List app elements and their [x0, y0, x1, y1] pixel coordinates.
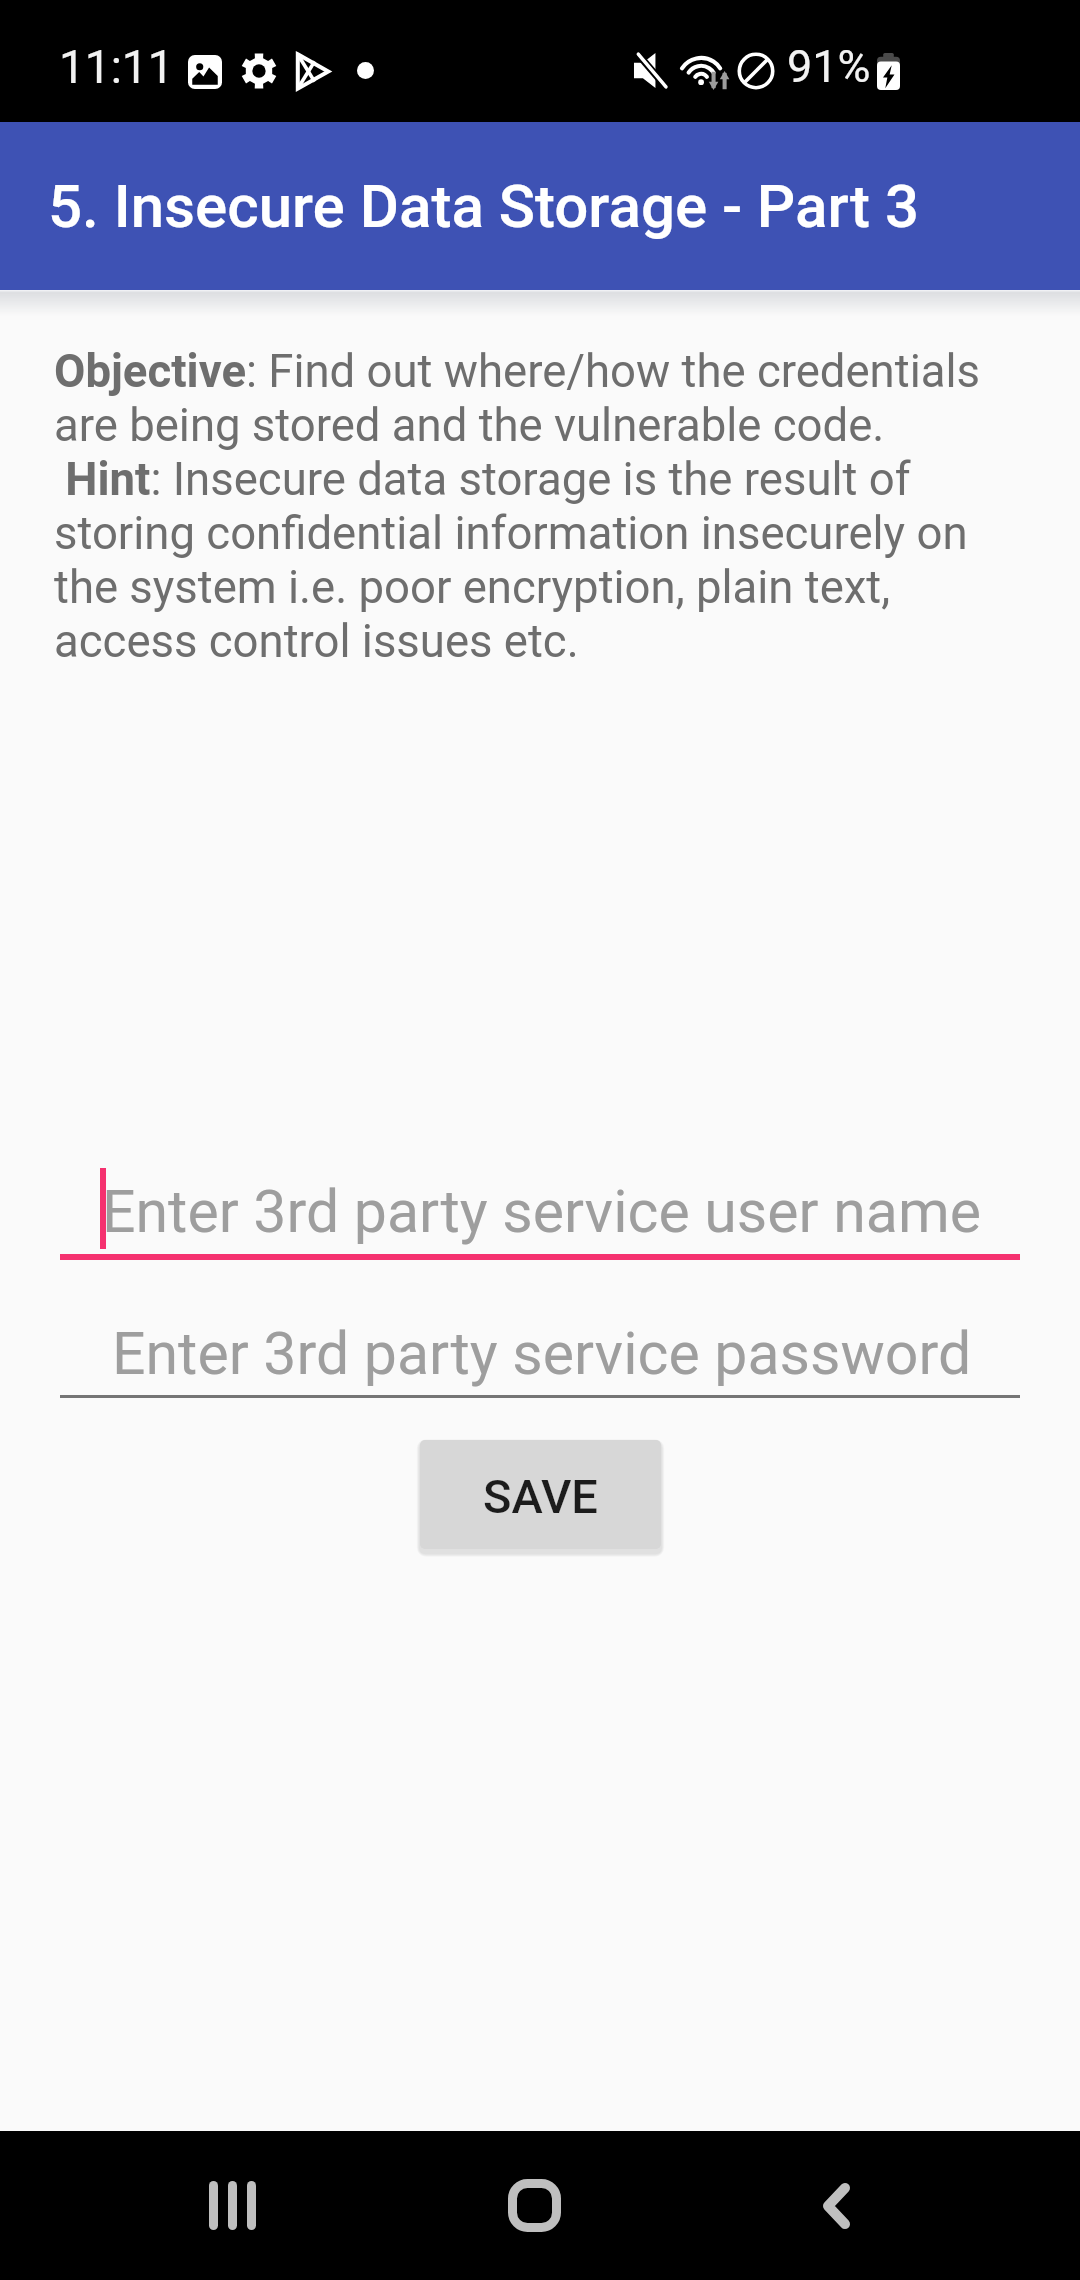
- button[interactable]: Back: [776, 2131, 896, 2280]
- button[interactable]: Home: [474, 2131, 594, 2280]
- staticText: Objective: Find out where/how the creden…: [54, 345, 1034, 668]
- button[interactable]: Enter 3rd party service user name: [0, 1138, 1080, 1258]
- staticText: 91%: [787, 40, 871, 93]
- staticText: Enter 3rd party service password: [112, 1319, 972, 1388]
- button[interactable]: Recents: [172, 2131, 292, 2280]
- staticText: Enter 3rd party service user name: [102, 1177, 981, 1246]
- button[interactable]: Enter 3rd party service password: [0, 1279, 1080, 1399]
- button[interactable]: SAVE: [420, 1440, 661, 1549]
- staticText: 11:11: [59, 40, 174, 94]
- staticText: 5. Insecure Data Storage - Part 3: [48, 171, 919, 241]
- staticText: SAVE: [483, 1469, 598, 1524]
